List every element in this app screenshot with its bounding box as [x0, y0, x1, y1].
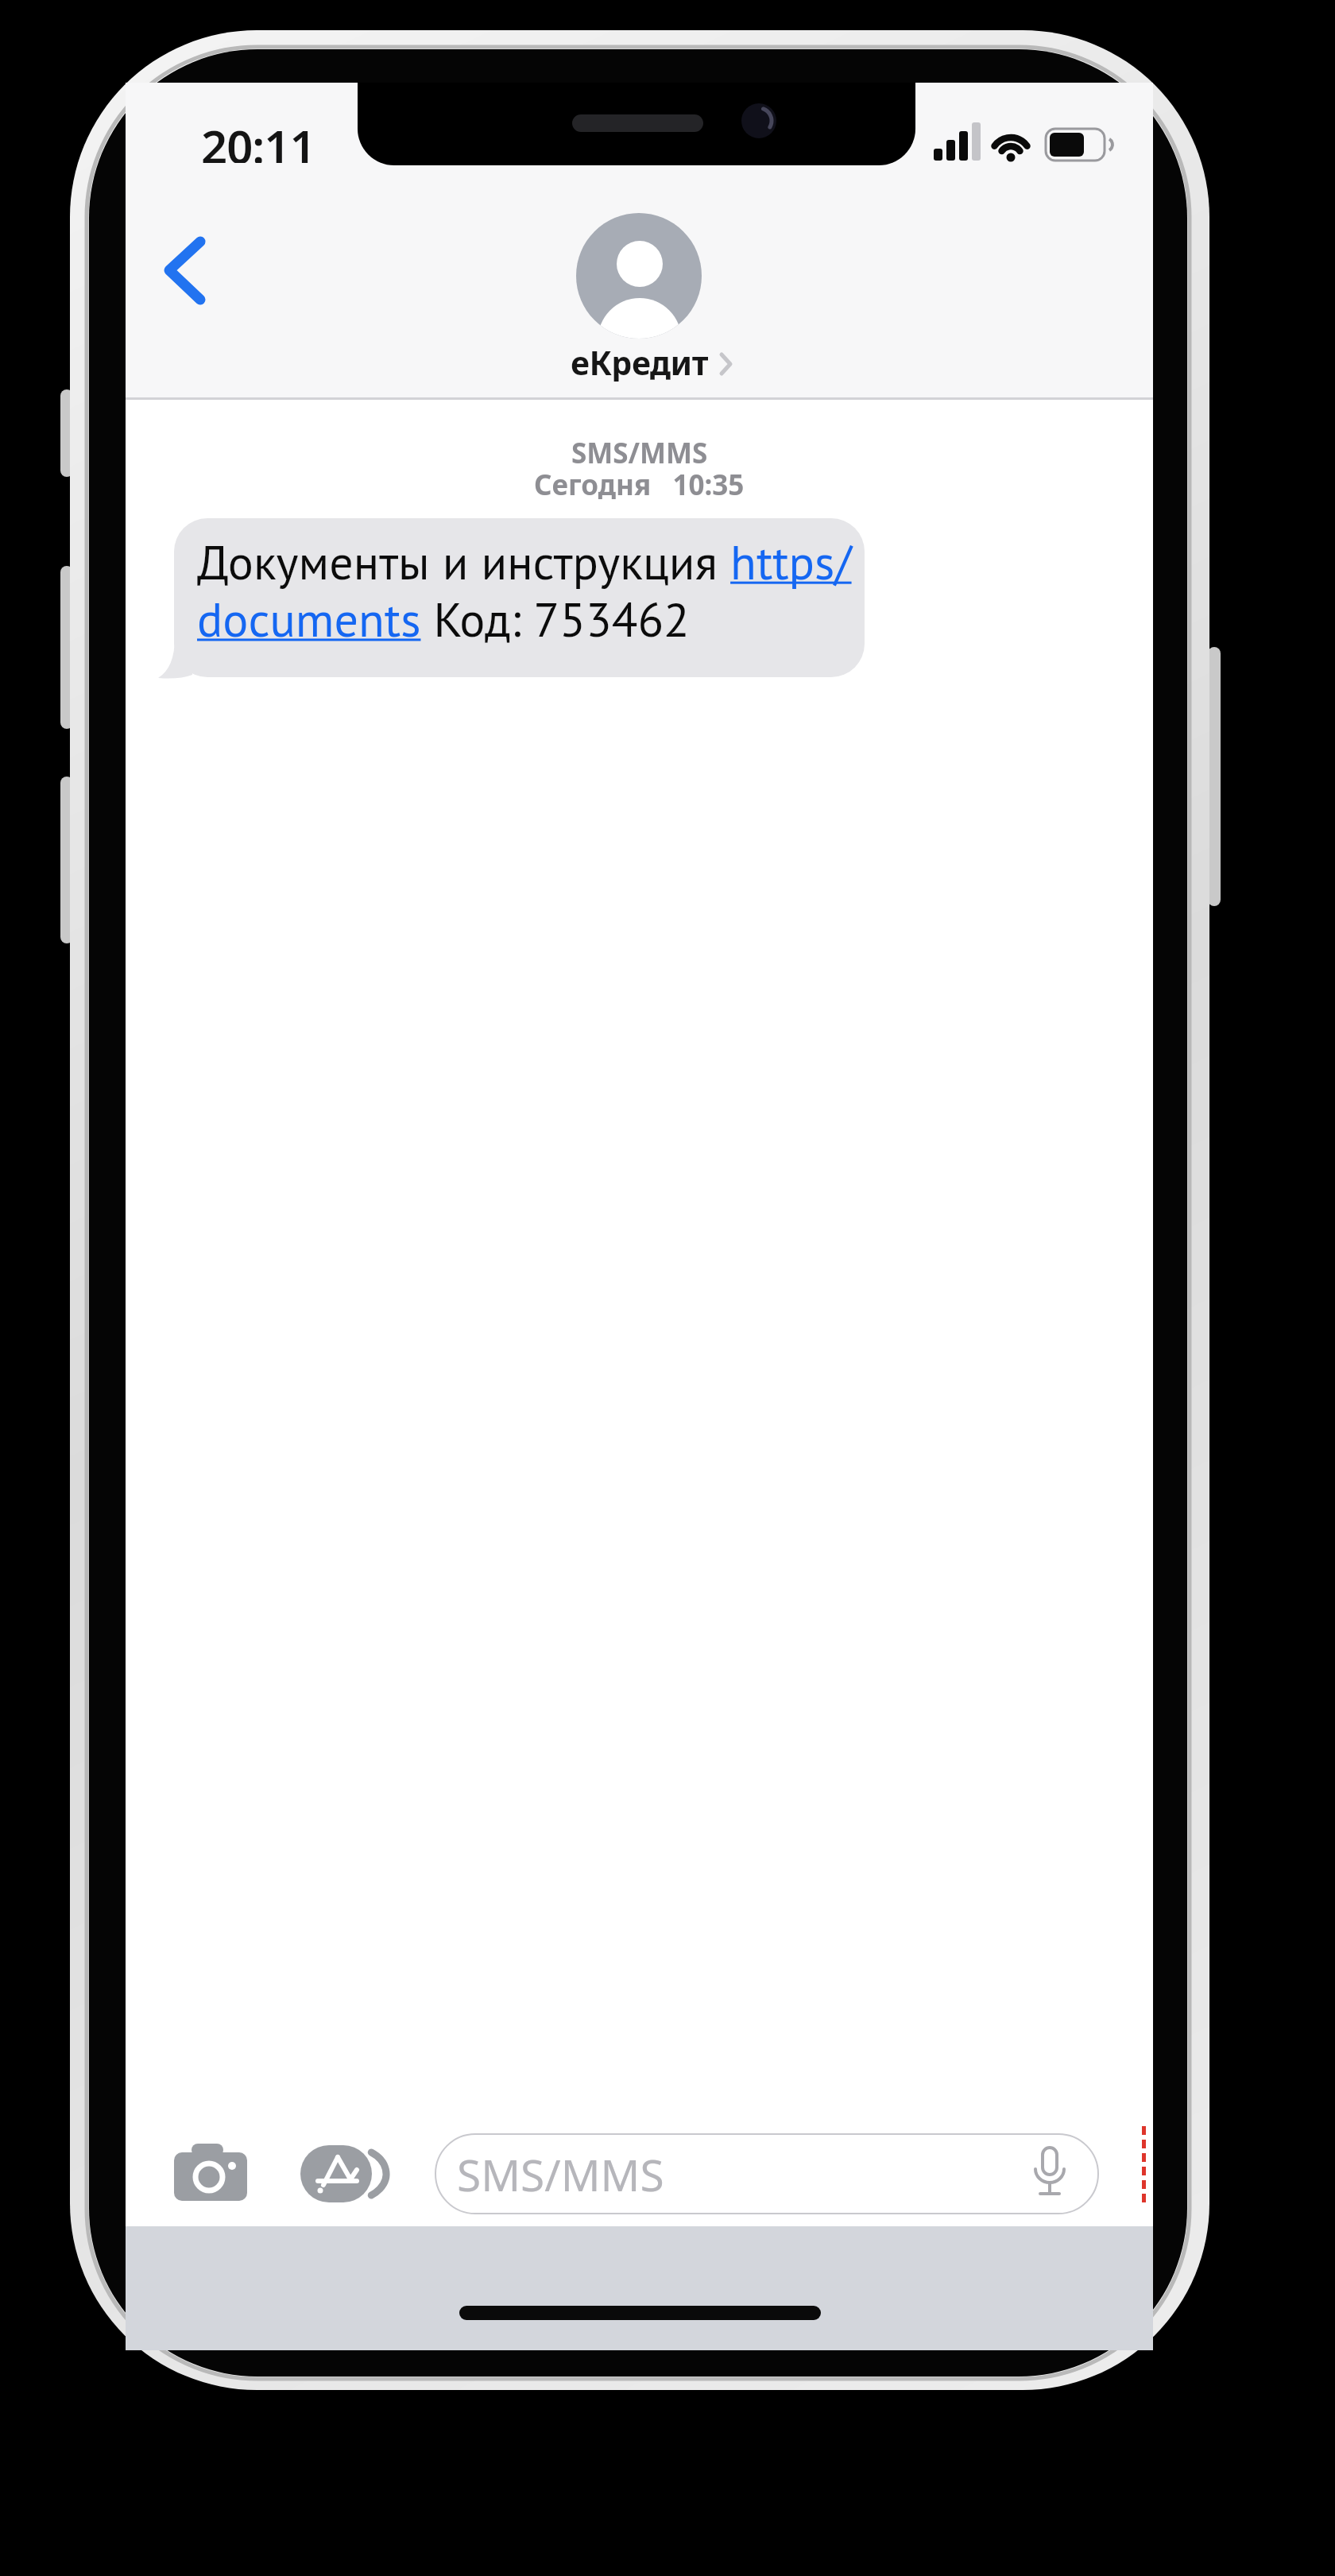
staticText: SMS/MMS — [571, 434, 708, 472]
staticText: Документы и инструкция https/ documents … — [197, 531, 852, 649]
staticText: SMS/MMS — [457, 2144, 664, 2204]
staticText: 20:11 — [201, 114, 315, 163]
button[interactable] — [555, 210, 737, 381]
staticText: еКредит — [571, 340, 708, 382]
staticText: Сегодня 10:35 — [534, 466, 745, 504]
button[interactable]: SMS/MMS — [435, 2133, 1099, 2214]
button[interactable] — [165, 2133, 257, 2213]
button[interactable] — [296, 2137, 392, 2210]
button[interactable] — [149, 226, 221, 317]
